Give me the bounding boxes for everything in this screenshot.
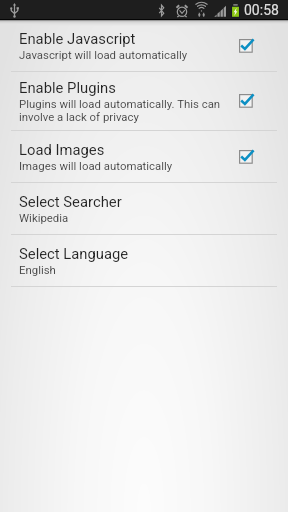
staticText: Plugins will load automatically. This ca… <box>19 97 221 124</box>
button[interactable]: Select Searcher <box>0 183 288 234</box>
staticText: Select Language <box>19 245 129 262</box>
staticText: English <box>19 263 56 276</box>
button[interactable]: Load Images <box>236 146 258 168</box>
staticText: 00:58 <box>244 2 279 18</box>
button[interactable]: Load Images <box>0 131 288 182</box>
button[interactable]: Enable Plugins <box>236 90 258 112</box>
button[interactable]: Enable Javascript <box>236 35 258 57</box>
staticText: Wikipedia <box>19 211 69 224</box>
staticText: Javascript will load automatically <box>19 48 188 61</box>
staticText: Select Searcher <box>19 193 122 210</box>
staticText: Enable Javascript <box>19 30 136 47</box>
button[interactable]: Enable Plugins <box>0 72 288 130</box>
button[interactable]: Select Language <box>0 235 288 286</box>
button[interactable]: Enable Javascript <box>0 20 288 71</box>
staticText: Load Images <box>19 141 105 158</box>
staticText: Images will load automatically <box>19 159 173 172</box>
staticText: Enable Plugins <box>19 79 116 96</box>
